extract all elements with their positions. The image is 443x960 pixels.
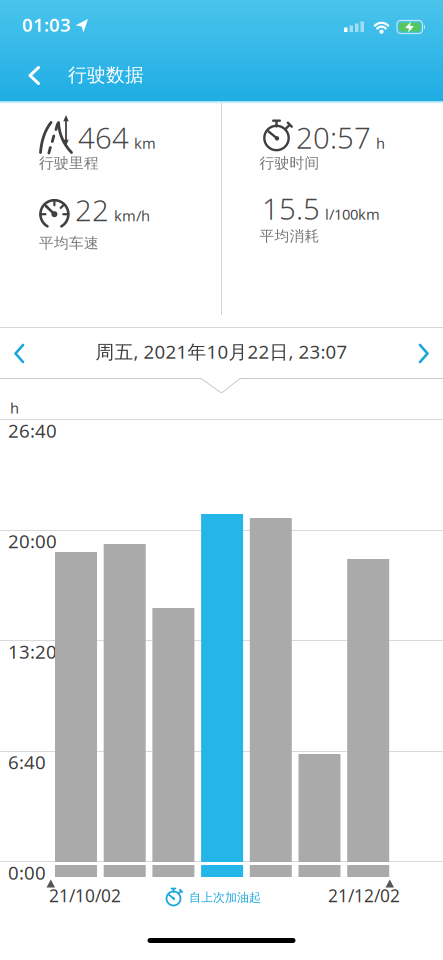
staticText: 20:57: [296, 118, 371, 157]
staticText: h: [10, 398, 19, 417]
staticText: km/h: [114, 206, 150, 225]
staticText: 行驶时间: [259, 154, 319, 172]
staticText: 6:40: [8, 749, 46, 774]
staticText: 周五, 2021年10月22日, 23:07: [95, 339, 347, 364]
staticText: h: [376, 133, 385, 153]
staticText: 行驶数据: [68, 63, 144, 86]
staticText: 26:40: [8, 418, 57, 443]
staticText: 行驶里程: [39, 154, 99, 172]
staticText: 21/10/02: [49, 884, 121, 907]
staticText: 01:03: [22, 12, 71, 37]
staticText: 22: [75, 190, 109, 229]
staticText: 平均车速: [39, 234, 99, 252]
staticText: 0:00: [8, 860, 46, 885]
staticText: 20:00: [8, 528, 57, 553]
staticText: 15.5: [262, 189, 320, 228]
staticText: 464: [78, 118, 129, 157]
staticText: 21/12/02: [328, 884, 400, 907]
button[interactable]: Previous day: [0, 332, 44, 376]
button[interactable]: 自上次加油起: [164, 887, 261, 908]
staticText: 平均消耗: [259, 227, 319, 245]
staticText: 13:20: [8, 639, 57, 664]
staticText: l/100km: [325, 204, 380, 224]
button[interactable]: Back: [10, 56, 54, 96]
button[interactable]: 周五, 2021年10月22日, 23:07: [0, 339, 443, 364]
staticText: 自上次加油起: [189, 890, 261, 905]
staticText: km: [134, 133, 156, 153]
button[interactable]: Next day: [399, 332, 443, 376]
